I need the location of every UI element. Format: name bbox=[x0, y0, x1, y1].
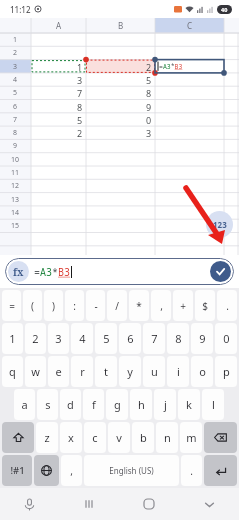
button[interactable]: Change language bbox=[34, 455, 59, 486]
button[interactable]: + bbox=[173, 290, 193, 321]
button[interactable]: , bbox=[151, 290, 171, 321]
button[interactable]: c bbox=[84, 422, 106, 453]
button[interactable]: 10 bbox=[0, 153, 31, 166]
button[interactable]: p bbox=[215, 356, 237, 387]
button[interactable]: v bbox=[108, 422, 130, 453]
button[interactable]: 0 bbox=[215, 323, 237, 354]
button[interactable]: : bbox=[65, 290, 84, 321]
button[interactable]: 8 bbox=[86, 86, 152, 99]
button[interactable]: 11 bbox=[0, 166, 31, 179]
button[interactable]: t bbox=[95, 356, 117, 387]
staticText: 11 bbox=[11, 168, 20, 178]
button[interactable]: z bbox=[36, 422, 58, 453]
button[interactable]: ) bbox=[44, 290, 63, 321]
staticText: 1 bbox=[13, 35, 18, 45]
button[interactable]: ( bbox=[23, 290, 42, 321]
button[interactable]: 7 bbox=[143, 323, 165, 354]
button[interactable]: , bbox=[61, 455, 82, 486]
button[interactable]: 3 bbox=[86, 126, 152, 139]
button[interactable]: Confirm bbox=[210, 261, 231, 282]
button[interactable]: 0 bbox=[86, 113, 152, 126]
button[interactable]: 7 bbox=[31, 86, 83, 99]
button[interactable]: 9 bbox=[86, 100, 152, 113]
button[interactable]: 3 bbox=[0, 60, 31, 73]
button[interactable]: * bbox=[129, 290, 149, 321]
button[interactable]: 1 bbox=[31, 60, 83, 73]
button[interactable]: 2 bbox=[86, 60, 152, 73]
button[interactable]: m bbox=[180, 422, 202, 453]
button[interactable]: 12 bbox=[0, 179, 31, 192]
button[interactable]: 5 bbox=[95, 323, 117, 354]
button[interactable]: h bbox=[130, 389, 152, 420]
button[interactable]: j bbox=[154, 389, 176, 420]
button[interactable]: 2 bbox=[25, 323, 46, 354]
button[interactable]: 9 bbox=[0, 139, 31, 152]
button[interactable]: !#1 bbox=[2, 455, 32, 486]
staticText: 12 bbox=[11, 181, 20, 191]
button[interactable]: Number format bbox=[206, 211, 233, 238]
button[interactable]: 3 bbox=[31, 73, 83, 86]
button[interactable]: x bbox=[60, 422, 82, 453]
button[interactable]: Back bbox=[179, 488, 239, 520]
button[interactable]: . bbox=[181, 455, 202, 486]
button[interactable]: Functions bbox=[8, 261, 29, 282]
button[interactable]: a bbox=[14, 389, 35, 420]
button[interactable]: 5 bbox=[0, 86, 31, 99]
button[interactable]: 1 bbox=[2, 323, 23, 354]
button[interactable]: =A3*B3 bbox=[159, 60, 183, 73]
button[interactable]: o bbox=[191, 356, 213, 387]
button[interactable]: f bbox=[83, 389, 104, 420]
button[interactable]: - bbox=[86, 290, 105, 321]
button[interactable]: . bbox=[217, 290, 237, 321]
button[interactable]: = bbox=[2, 290, 21, 321]
button[interactable]: A bbox=[31, 18, 86, 33]
button[interactable]: g bbox=[106, 389, 128, 420]
button[interactable]: l bbox=[202, 389, 224, 420]
button[interactable]: English (US) bbox=[84, 455, 179, 486]
button[interactable]: B bbox=[86, 18, 155, 33]
staticText: = bbox=[9, 299, 15, 313]
button[interactable]: e bbox=[48, 356, 69, 387]
button[interactable]: Voice input bbox=[0, 488, 59, 520]
button[interactable]: s bbox=[37, 389, 58, 420]
button[interactable]: i bbox=[167, 356, 189, 387]
button[interactable]: d bbox=[60, 389, 81, 420]
button[interactable]: r bbox=[71, 356, 93, 387]
button[interactable]: b bbox=[132, 422, 154, 453]
button[interactable]: 4 bbox=[0, 73, 31, 86]
staticText: fx bbox=[13, 265, 24, 279]
button[interactable]: 9 bbox=[191, 323, 213, 354]
button[interactable]: q bbox=[2, 356, 23, 387]
button[interactable]: 14 bbox=[0, 206, 31, 219]
button[interactable]: Backspace bbox=[204, 422, 237, 453]
staticText: 123 bbox=[213, 219, 227, 230]
button[interactable]: 1 bbox=[0, 33, 31, 46]
button[interactable]: Home bbox=[119, 488, 179, 520]
button[interactable]: 6 bbox=[0, 100, 31, 113]
button[interactable]: Shift bbox=[2, 422, 34, 453]
button[interactable]: 8 bbox=[167, 323, 189, 354]
button[interactable]: 8 bbox=[0, 126, 31, 139]
button[interactable]: / bbox=[107, 290, 127, 321]
button[interactable]: C bbox=[155, 18, 224, 33]
button[interactable]: y bbox=[119, 356, 141, 387]
button[interactable]: 6 bbox=[119, 323, 141, 354]
staticText: =A3*B3 bbox=[34, 265, 70, 279]
button[interactable]: 7 bbox=[0, 113, 31, 126]
button[interactable]: 5 bbox=[86, 73, 152, 86]
button[interactable]: u bbox=[143, 356, 165, 387]
button[interactable]: 5 bbox=[31, 113, 83, 126]
button[interactable]: 3 bbox=[48, 323, 69, 354]
button[interactable]: 15 bbox=[0, 219, 31, 232]
button[interactable]: $ bbox=[195, 290, 215, 321]
button[interactable]: 2 bbox=[31, 126, 83, 139]
button[interactable]: Recent apps bbox=[59, 488, 119, 520]
button[interactable]: k bbox=[178, 389, 200, 420]
button[interactable]: 13 bbox=[0, 193, 31, 206]
button[interactable]: w bbox=[25, 356, 46, 387]
button[interactable]: n bbox=[156, 422, 178, 453]
button[interactable]: 8 bbox=[31, 100, 83, 113]
button[interactable]: Enter bbox=[204, 455, 237, 486]
button[interactable]: 4 bbox=[71, 323, 93, 354]
button[interactable]: 2 bbox=[0, 46, 31, 59]
